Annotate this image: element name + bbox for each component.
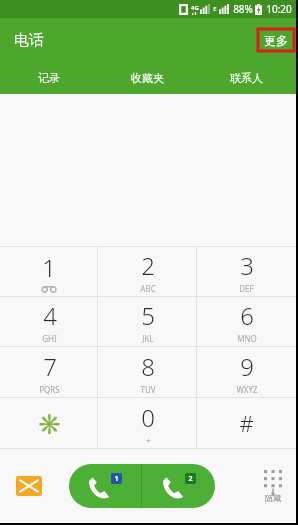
staticText: 5 bbox=[141, 299, 155, 332]
staticText: + bbox=[146, 435, 151, 446]
staticText: # bbox=[239, 408, 254, 438]
staticText: 6 bbox=[240, 299, 254, 332]
button[interactable]: 收藏夹 bbox=[98, 62, 197, 94]
staticText: GHI bbox=[42, 333, 57, 344]
button[interactable]: 1 bbox=[0, 247, 98, 296]
staticText: 7 bbox=[43, 350, 57, 383]
staticText: 9 bbox=[240, 350, 254, 383]
button[interactable]: 4 bbox=[0, 297, 98, 346]
staticText: 更多 bbox=[264, 33, 288, 48]
staticText: 电话 bbox=[14, 31, 44, 50]
staticText: 隐藏 bbox=[265, 493, 281, 503]
button[interactable]: 联系人 bbox=[197, 62, 296, 94]
staticText: WXYZ bbox=[236, 384, 258, 395]
staticText: 10:20 bbox=[266, 2, 292, 16]
button[interactable]: Message bbox=[16, 476, 42, 496]
button[interactable]: Call with SIM 1 bbox=[69, 464, 141, 508]
button[interactable]: 2 bbox=[98, 247, 197, 296]
staticText: 1 bbox=[114, 474, 119, 484]
staticText: 1 bbox=[42, 251, 56, 284]
staticText: 88% bbox=[233, 2, 253, 16]
staticText: 2 bbox=[188, 474, 193, 484]
staticText: 记录 bbox=[38, 71, 60, 85]
staticText: DEF bbox=[239, 283, 254, 294]
staticText: MNO bbox=[237, 333, 257, 344]
button[interactable]: 电话 bbox=[14, 31, 44, 50]
button[interactable]: Hide keypad bbox=[264, 470, 282, 503]
staticText: ✳ bbox=[37, 412, 62, 435]
button[interactable]: ✳ bbox=[0, 398, 98, 448]
button[interactable]: 0 bbox=[98, 398, 197, 448]
button[interactable]: 5 bbox=[98, 297, 197, 346]
staticText: PQRS bbox=[39, 384, 60, 395]
staticText: 3 bbox=[240, 249, 254, 282]
button[interactable]: Call with SIM 2 bbox=[142, 464, 215, 508]
button[interactable]: 3 bbox=[197, 247, 296, 296]
button[interactable]: # bbox=[197, 398, 296, 448]
staticText: TUV bbox=[140, 384, 156, 395]
staticText: 2 bbox=[141, 249, 155, 282]
button[interactable]: 8 bbox=[98, 347, 197, 397]
button[interactable]: 更多 bbox=[258, 29, 294, 51]
button[interactable]: 7 bbox=[0, 347, 98, 397]
button[interactable]: 6 bbox=[197, 297, 296, 346]
staticText: 4G bbox=[191, 4, 199, 12]
staticText: JKL bbox=[142, 333, 154, 344]
staticText: 收藏夹 bbox=[131, 71, 164, 85]
staticText: 联系人 bbox=[230, 71, 263, 85]
staticText: 8 bbox=[141, 350, 155, 383]
staticText: 4 bbox=[43, 299, 57, 332]
button[interactable]: 记录 bbox=[0, 62, 98, 94]
staticText: 0 bbox=[141, 401, 155, 434]
staticText: ABC bbox=[140, 283, 156, 294]
staticText: E bbox=[213, 5, 217, 13]
button[interactable]: 9 bbox=[197, 347, 296, 397]
